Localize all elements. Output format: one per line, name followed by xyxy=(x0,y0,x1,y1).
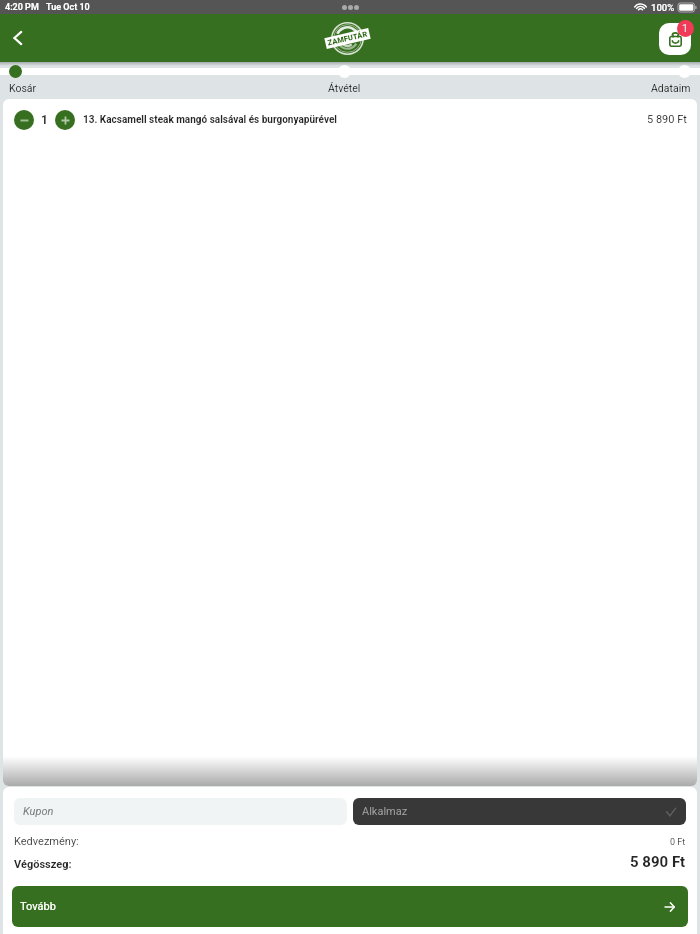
staticText: 1 xyxy=(41,113,48,127)
staticText: 4:20 PM xyxy=(5,2,39,13)
button[interactable] xyxy=(9,65,22,78)
staticText: 5 890 Ft xyxy=(647,113,687,126)
staticText: Kedvezmény: xyxy=(14,835,79,848)
button[interactable] xyxy=(338,65,351,78)
button[interactable]: Cart xyxy=(659,20,694,55)
staticText: 13. Kacsamell steak mangó salsával és bu… xyxy=(83,114,337,126)
staticText: ZAMFUTÁR xyxy=(326,29,368,47)
staticText: Átvétel xyxy=(328,82,361,94)
button[interactable] xyxy=(678,65,691,78)
staticText: Kosár xyxy=(9,82,37,94)
staticText: Végösszeg: xyxy=(14,858,72,871)
button[interactable]: Decrease quantity xyxy=(3,99,697,140)
staticText: Tue Oct 10 xyxy=(46,2,90,13)
staticText: 100% xyxy=(651,2,675,13)
staticText: Kupon xyxy=(23,805,54,818)
button[interactable]: Back xyxy=(6,26,30,50)
staticText: Tovább xyxy=(20,900,56,913)
button[interactable]: Decrease quantity xyxy=(14,110,34,130)
staticText: Adataim xyxy=(651,82,691,94)
staticText: Alkalmaz xyxy=(362,805,408,818)
button[interactable]: Kupon xyxy=(14,798,347,825)
staticText: 0 Ft xyxy=(670,837,686,848)
button[interactable]: Alkalmaz xyxy=(353,798,686,825)
button[interactable]: Tovább xyxy=(12,886,688,927)
staticText: 1 xyxy=(682,22,689,35)
button[interactable]: Increase quantity xyxy=(55,110,75,130)
staticText: 5 890 Ft xyxy=(630,853,686,871)
